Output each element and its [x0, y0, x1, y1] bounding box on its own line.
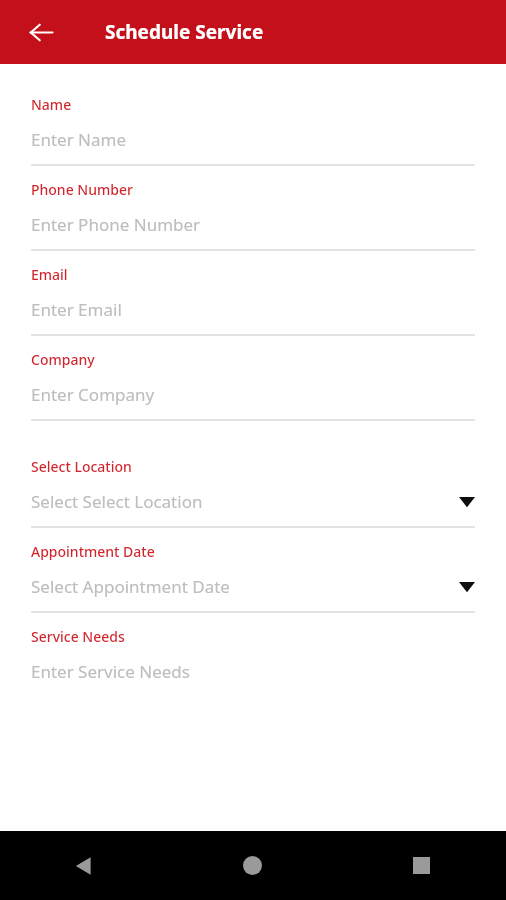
button[interactable]: Recent apps [337, 831, 506, 900]
staticText: Enter Name [31, 128, 475, 151]
button[interactable]: Appointment Date [0, 528, 506, 613]
staticText: Enter Phone Number [31, 213, 475, 236]
staticText: Name [31, 95, 72, 114]
button[interactable]: Phone Number [0, 166, 506, 251]
staticText: Select Select Location [31, 490, 459, 513]
staticText: Enter Service Needs [31, 660, 475, 683]
staticText: Select Appointment Date [31, 575, 459, 598]
button[interactable]: Email [0, 251, 506, 336]
staticText: Appointment Date [31, 542, 155, 561]
staticText: Email [31, 265, 68, 284]
button[interactable]: Home [168, 831, 337, 900]
staticText: Select Location [31, 457, 132, 476]
button[interactable]: Back [0, 831, 168, 900]
button[interactable]: Service Needs [0, 613, 506, 696]
staticText: Enter Company [31, 383, 475, 406]
button[interactable]: Company [0, 336, 506, 421]
staticText: Company [31, 350, 95, 369]
button[interactable]: Back [19, 10, 63, 54]
staticText: Enter Email [31, 298, 475, 321]
button[interactable]: Select Location [0, 443, 506, 528]
staticText: Service Needs [31, 627, 125, 646]
staticText: Phone Number [31, 180, 133, 199]
staticText: Schedule Service [105, 19, 264, 45]
button[interactable]: Name [0, 81, 506, 166]
